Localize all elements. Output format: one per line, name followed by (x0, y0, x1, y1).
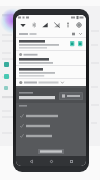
button[interactable] (59, 92, 83, 100)
button[interactable]: Bluetooth (30, 21, 38, 29)
button[interactable] (16, 111, 86, 121)
button[interactable]: Settings (75, 21, 83, 29)
button[interactable]: Data saver (53, 21, 61, 29)
button[interactable]: Back (26, 156, 36, 166)
button[interactable]: Recent apps (66, 156, 76, 166)
button[interactable]: Mobile data (41, 21, 49, 29)
button[interactable] (16, 51, 86, 65)
button[interactable]: Wi-Fi (19, 21, 27, 29)
button[interactable]: Flashlight (64, 21, 72, 29)
button[interactable]: Home (46, 156, 56, 166)
button[interactable] (16, 38, 86, 50)
button[interactable] (16, 131, 86, 141)
button[interactable] (16, 121, 86, 131)
button[interactable] (16, 66, 86, 78)
button[interactable] (16, 79, 86, 86)
